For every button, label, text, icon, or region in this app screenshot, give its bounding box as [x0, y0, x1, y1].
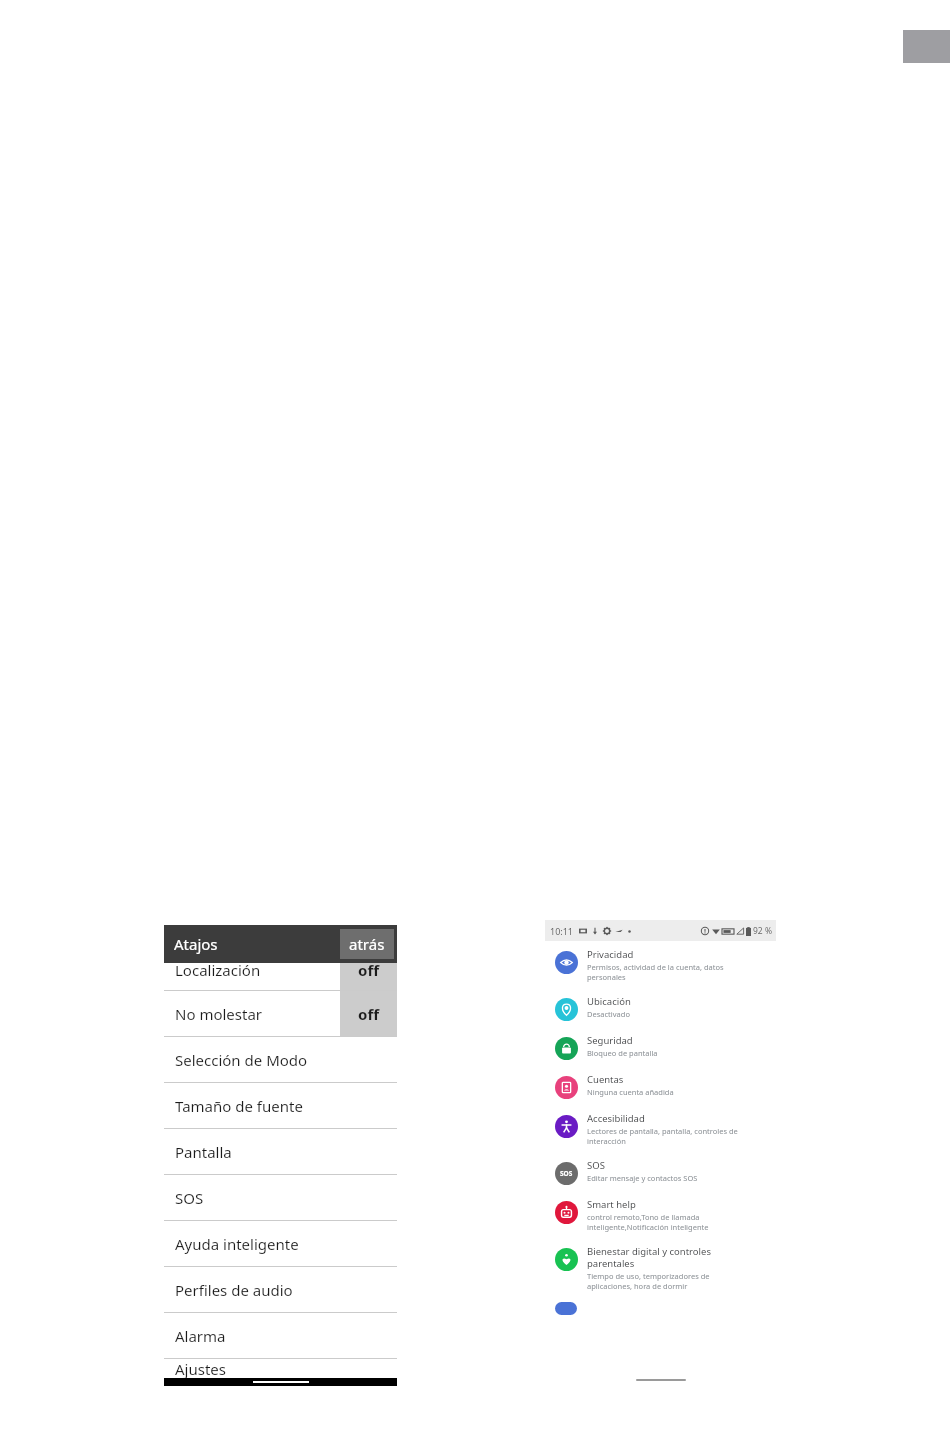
staticText: Permisos, actividad de la cuenta, datos …: [587, 962, 724, 982]
staticText: Ajustes: [175, 1359, 226, 1378]
staticText: Accesibilidad: [587, 1112, 645, 1125]
button[interactable]: SOS: [545, 1152, 776, 1191]
button[interactable]: atrás: [340, 929, 394, 959]
button[interactable]: Privacidad: [545, 941, 776, 988]
button[interactable]: Smart help: [545, 1191, 776, 1238]
staticText: Localización: [175, 960, 261, 980]
staticText: Atajos: [174, 934, 218, 954]
staticText: off: [358, 1004, 379, 1024]
button[interactable]: Accesibilidad: [545, 1105, 776, 1152]
staticText: SOS: [587, 1159, 605, 1172]
button[interactable]: Cuentas: [545, 1066, 776, 1105]
staticText: Alarma: [175, 1326, 226, 1346]
staticText: off: [358, 960, 379, 980]
button[interactable]: Bienestar digital y controles parentales: [545, 1238, 776, 1297]
staticText: 92 %: [753, 925, 772, 937]
staticText: Ninguna cuenta añadida: [587, 1087, 674, 1097]
staticText: atrás: [349, 934, 385, 954]
staticText: Editar mensaje y contactos SOS: [587, 1173, 698, 1183]
button[interactable]: Tamaño de fuente: [164, 1083, 397, 1128]
other: Smart help: [555, 1201, 578, 1224]
button[interactable]: Seguridad: [545, 1027, 776, 1066]
button[interactable]: Selección de Modo: [164, 1037, 397, 1082]
staticText: Lectores de pantalla, pantalla, controle…: [587, 1126, 738, 1146]
staticText: Ubicación: [587, 995, 631, 1008]
staticText: Bloqueo de pantalla: [587, 1048, 658, 1058]
other: Accesibilidad: [555, 1115, 578, 1138]
staticText: SOS: [175, 1188, 204, 1208]
button[interactable]: Ajustes: [164, 1359, 397, 1378]
button[interactable]: Ayuda inteligente: [164, 1221, 397, 1266]
staticText: Pantalla: [175, 1142, 232, 1162]
staticText: Selección de Modo: [175, 1050, 308, 1070]
button[interactable]: Pantalla: [164, 1129, 397, 1174]
staticText: Bienestar digital y controles parentales: [587, 1245, 711, 1270]
button[interactable]: Localización: [164, 963, 397, 990]
other: Cuentas: [555, 1076, 578, 1099]
button[interactable]: No molestar: [164, 991, 397, 1036]
staticText: Seguridad: [587, 1034, 633, 1047]
staticText: Tamaño de fuente: [175, 1096, 303, 1116]
staticText: Perfiles de audio: [175, 1280, 293, 1300]
staticText: Cuentas: [587, 1073, 624, 1086]
staticText: 10:11: [550, 925, 574, 937]
staticText: control remoto,Tono de llamada inteligen…: [587, 1212, 709, 1232]
button[interactable]: SOS: [164, 1175, 397, 1220]
button[interactable]: Ubicación: [545, 988, 776, 1027]
button[interactable]: Perfiles de audio: [164, 1267, 397, 1312]
staticText: Tiempo de uso, temporizadores de aplicac…: [587, 1271, 710, 1291]
other: SOS: [555, 1162, 578, 1185]
staticText: Ayuda inteligente: [175, 1234, 299, 1254]
other: Ubicación: [555, 998, 578, 1021]
other: Privacidad: [555, 951, 578, 974]
button[interactable]: Alarma: [164, 1313, 397, 1358]
other: Seguridad: [555, 1037, 578, 1060]
button[interactable]: [545, 1297, 776, 1310]
staticText: Privacidad: [587, 948, 634, 961]
staticText: SOS: [560, 1169, 573, 1178]
staticText: Desactivado: [587, 1009, 630, 1019]
staticText: No molestar: [175, 1004, 263, 1024]
other: Bienestar digital y controles parentales: [555, 1248, 578, 1271]
staticText: Smart help: [587, 1198, 636, 1211]
